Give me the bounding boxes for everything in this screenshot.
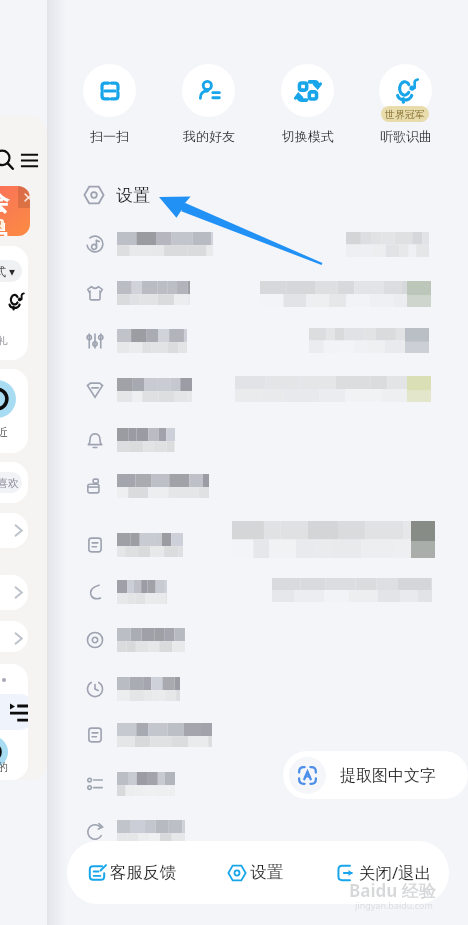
button[interactable]: Switch mode: [267, 64, 347, 144]
staticText: 客服反馈: [110, 862, 176, 883]
staticText: 提取图中文字: [340, 766, 436, 786]
staticText: 会员: [0, 186, 30, 236]
other: Switch mode: [296, 79, 320, 103]
staticText: 喜欢: [0, 476, 19, 490]
button[interactable]: [60, 760, 468, 808]
button[interactable]: Feedback: [86, 841, 178, 904]
button[interactable]: [60, 616, 468, 664]
other: Close or exit: [337, 864, 355, 882]
staticText: Baidu 经验: [349, 879, 436, 902]
staticText: 关闭/退出: [359, 861, 432, 884]
other: Song recognition: [394, 79, 418, 103]
button[interactable]: [60, 711, 468, 759]
staticText: jingyan.baidu.com: [355, 899, 433, 911]
staticText: 模式 ▾: [0, 263, 16, 279]
button[interactable]: [60, 317, 468, 365]
button[interactable]: Friends: [168, 64, 248, 144]
staticText: 我的: [0, 760, 8, 774]
button[interactable]: 设置: [226, 841, 285, 904]
other: Extract text: [298, 766, 317, 785]
button[interactable]: [60, 366, 468, 414]
staticText: 我的好友: [183, 128, 235, 144]
button[interactable]: [60, 269, 468, 317]
staticText: 设置: [116, 185, 150, 206]
button[interactable]: 设置: [60, 180, 150, 210]
staticText: 最近: [0, 425, 8, 439]
staticText: 世界冠军: [385, 108, 425, 121]
other: Friends: [197, 79, 221, 103]
other: Scan: [98, 79, 122, 103]
staticText: 领好礼: [0, 334, 8, 347]
button[interactable]: [60, 462, 468, 510]
button[interactable]: [60, 220, 468, 268]
button[interactable]: Song recognition: [365, 64, 445, 144]
button[interactable]: [60, 521, 468, 569]
button[interactable]: [60, 568, 468, 616]
staticText: 扫一扫: [90, 128, 129, 144]
button[interactable]: [60, 808, 468, 856]
other: Feedback: [88, 864, 106, 882]
staticText: 设置: [250, 862, 283, 883]
button[interactable]: Close or exit: [335, 841, 434, 904]
staticText: 听歌识曲: [380, 128, 432, 144]
button[interactable]: Scan: [69, 64, 149, 144]
button[interactable]: [60, 665, 468, 713]
button[interactable]: [60, 416, 468, 464]
staticText: 切换模式: [282, 128, 334, 144]
button[interactable]: Extract text: [283, 751, 468, 799]
staticText: 特权: [0, 219, 2, 230]
